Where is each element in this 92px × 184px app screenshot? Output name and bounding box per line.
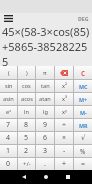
staticText: eˣ (6, 108, 12, 116)
button[interactable]: xʸ (55, 106, 73, 118)
button[interactable]: ÷ (55, 119, 73, 131)
staticText: 8 (24, 120, 29, 130)
staticText: 2 (24, 146, 29, 156)
staticText: 5 (24, 133, 29, 143)
button[interactable]: ln (18, 106, 35, 118)
staticText: √ (81, 134, 86, 142)
button[interactable]: Back (13, 170, 35, 184)
button[interactable]: 3 (36, 145, 54, 157)
staticText: xʸ (62, 108, 67, 116)
staticText: +5865-385282255 (2, 39, 90, 66)
staticText: . (44, 159, 46, 169)
button[interactable]: cos (18, 80, 35, 92)
button[interactable]: - (55, 145, 73, 157)
button[interactable]: Recents (57, 170, 79, 184)
staticText: x² (62, 82, 67, 90)
button[interactable]: 5 (18, 132, 35, 144)
button[interactable]: 9 (36, 119, 54, 131)
button[interactable]: x³ (55, 93, 73, 105)
staticText: cos (22, 82, 31, 90)
staticText: % (80, 147, 86, 156)
button[interactable]: lg (36, 106, 54, 118)
staticText: lg (43, 108, 48, 116)
button[interactable]: 7 (0, 119, 17, 131)
button[interactable]: = (74, 158, 92, 170)
staticText: 0 (6, 159, 11, 169)
button[interactable]: 2 (18, 145, 35, 157)
button[interactable]: eˣ (0, 106, 17, 118)
staticText: + (62, 159, 67, 169)
staticText: 7 (6, 120, 11, 130)
button[interactable]: MC (74, 80, 92, 92)
staticText: ÷ (62, 120, 67, 130)
button[interactable]: asin (0, 93, 17, 105)
button[interactable]: Backspace (55, 66, 73, 79)
button[interactable]: π (36, 66, 54, 79)
button[interactable]: MR (74, 119, 92, 131)
button[interactable]: 0 (0, 158, 17, 170)
staticText: - (63, 146, 66, 156)
staticText: asin (3, 95, 14, 103)
staticText: 9 (43, 120, 48, 130)
button[interactable]: . (36, 158, 54, 170)
button[interactable]: 8 (18, 119, 35, 131)
staticText: sin (5, 82, 13, 90)
button[interactable]: M+ (74, 93, 92, 105)
staticText: x³ (62, 95, 67, 103)
staticText: ( (8, 69, 10, 77)
staticText: MC (79, 83, 88, 90)
staticText: 1 (6, 146, 11, 156)
staticText: tan (41, 82, 50, 90)
staticText: M- (80, 109, 87, 116)
button[interactable]: Home (35, 170, 57, 184)
button[interactable]: 4 (0, 132, 17, 144)
staticText: ) (26, 69, 28, 77)
button[interactable]: 1 (0, 145, 17, 157)
staticText: M+ (79, 96, 88, 103)
staticText: π (43, 69, 47, 77)
staticText: 45×(58-3×cos(85) (2, 24, 90, 39)
staticText: C (81, 69, 85, 77)
button[interactable]: tan (36, 80, 54, 92)
button[interactable]: sin (0, 80, 17, 92)
button[interactable]: % (74, 145, 92, 157)
staticText: 3 (43, 146, 48, 156)
staticText: 6 (43, 133, 48, 143)
staticText: ln (24, 108, 29, 116)
staticText: = (81, 159, 86, 169)
button[interactable]: + (55, 158, 73, 170)
button[interactable]: acos (18, 93, 35, 105)
button[interactable]: √ (74, 132, 92, 144)
staticText: +/- (23, 160, 31, 168)
button[interactable]: Menu (2, 13, 14, 24)
staticText: MR (79, 122, 88, 129)
staticText: DEG (78, 15, 89, 22)
staticText: atan (39, 95, 51, 103)
button[interactable]: atan (36, 93, 54, 105)
button[interactable]: × (55, 132, 73, 144)
button[interactable]: ( (0, 66, 17, 79)
staticText: acos (21, 95, 33, 103)
staticText: 4 (6, 133, 11, 143)
button[interactable]: DEG (78, 15, 89, 22)
staticText: × (62, 133, 67, 143)
button[interactable]: +/- (18, 158, 35, 170)
button[interactable]: C (74, 66, 92, 79)
button[interactable]: M- (74, 106, 92, 118)
button[interactable]: 6 (36, 132, 54, 144)
button[interactable]: ) (18, 66, 35, 79)
button[interactable]: x² (55, 80, 73, 92)
